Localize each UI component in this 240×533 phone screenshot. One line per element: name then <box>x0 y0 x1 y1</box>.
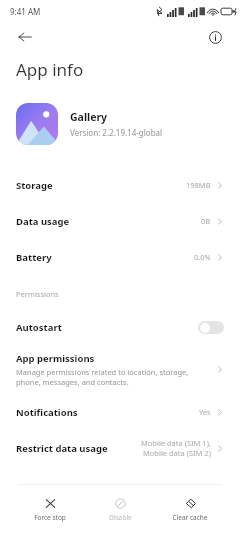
staticText: Battery <box>16 251 52 264</box>
button[interactable]: Notifications <box>0 394 240 430</box>
staticText: Gallery <box>70 110 108 124</box>
staticText: Manage permissions related to location, … <box>16 367 189 387</box>
button[interactable]: Autostart <box>0 309 240 345</box>
staticText: Force stop <box>34 513 66 522</box>
staticText: Permissions <box>16 289 59 299</box>
staticText: 0B <box>201 216 211 226</box>
button[interactable]: App permissions <box>0 345 240 394</box>
staticText: Data usage <box>16 215 70 228</box>
button[interactable]: Back <box>12 24 38 50</box>
staticText: Clear cache <box>172 513 208 522</box>
staticText: Disable <box>109 513 132 522</box>
button[interactable]: Clear cache <box>164 495 216 524</box>
staticText: Storage <box>16 179 53 192</box>
staticText: 198MB <box>186 180 211 190</box>
staticText: 0.0% <box>194 252 211 262</box>
staticText: App permissions <box>16 352 95 365</box>
staticText: Notifications <box>16 406 78 419</box>
staticText: 9:41 AM <box>10 6 41 17</box>
button[interactable]: Force stop <box>24 495 76 524</box>
staticText: Mobile data (SIM 1), <box>141 438 211 448</box>
staticText: Mobile data (SIM 2) <box>143 448 211 458</box>
button[interactable]: About <box>202 24 228 50</box>
button[interactable]: Restrict data usage <box>0 430 240 466</box>
button[interactable]: Battery <box>0 239 240 275</box>
staticText: Restrict data usage <box>16 442 108 455</box>
button[interactable]: Storage <box>0 167 240 203</box>
button[interactable]: Disable <box>94 495 146 524</box>
staticText: App info <box>16 58 84 81</box>
staticText: Autostart <box>16 321 62 334</box>
staticText: Version: 2.2.19.14-global <box>70 127 163 138</box>
staticText: Yes <box>199 407 211 417</box>
button[interactable]: Data usage <box>0 203 240 239</box>
